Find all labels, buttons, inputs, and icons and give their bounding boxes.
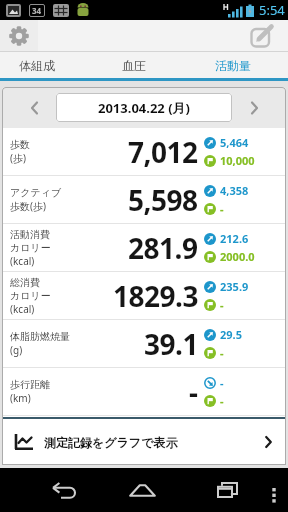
staticText: - [220,201,224,216]
staticText: (歩) [10,151,26,165]
staticText: (kcal) [10,254,35,268]
staticText: - [220,297,224,312]
staticText: - [220,345,224,360]
button[interactable]: 測定記録をグラフで表示 [2,419,286,465]
staticText: (g) [10,343,23,357]
staticText: 体脂肪燃焼量 [10,330,70,343]
staticText: 測定記録をグラフで表示 [44,435,178,450]
staticText: 34 [32,5,42,16]
button[interactable] [40,468,88,512]
staticText: 総消費 [10,276,40,289]
staticText: 2000.0 [220,249,255,264]
staticText: 体組成 [19,58,55,73]
staticText: 281.9 [128,229,198,267]
staticText: 5,464 [220,135,249,150]
staticText: (kcal) [10,302,35,316]
staticText: 2013.04.22 (月) [98,99,190,117]
staticText: アクティブ [10,186,62,199]
staticText: 39.1 [144,325,198,363]
staticText: カロリー [10,241,51,254]
staticText: 212.6 [220,231,249,246]
staticText: 歩行距離 [10,378,50,391]
staticText: 5:54 [259,1,285,19]
button[interactable]: 2013.04.22 (月) [56,93,232,122]
staticText: 7,012 [128,133,198,171]
button[interactable] [118,468,166,512]
staticText: 活動消費 [10,228,50,241]
staticText: 歩数(歩) [10,199,46,213]
staticText: 活動量 [215,58,251,73]
staticText: 歩数 [10,138,30,151]
button[interactable]: 血圧 [96,52,192,78]
button[interactable] [246,21,280,51]
button[interactable] [240,93,268,123]
staticText: - [220,375,224,390]
button[interactable] [0,20,38,52]
button[interactable] [203,468,251,512]
staticText: 1829.3 [113,277,198,315]
staticText: 血圧 [122,58,146,73]
staticText: - [189,373,198,411]
staticText: カロリー [10,289,51,302]
staticText: 10,000 [220,153,255,168]
staticText: (km) [10,391,31,405]
staticText: 4,358 [220,183,249,198]
staticText: 235.9 [220,279,249,294]
button[interactable] [20,93,48,123]
button[interactable]: 活動量 [192,52,288,78]
staticText: 29.5 [220,327,242,342]
staticText: 5,598 [128,181,198,219]
button[interactable]: 体組成 [0,52,96,78]
staticText: - [220,393,224,408]
button[interactable] [260,468,288,512]
